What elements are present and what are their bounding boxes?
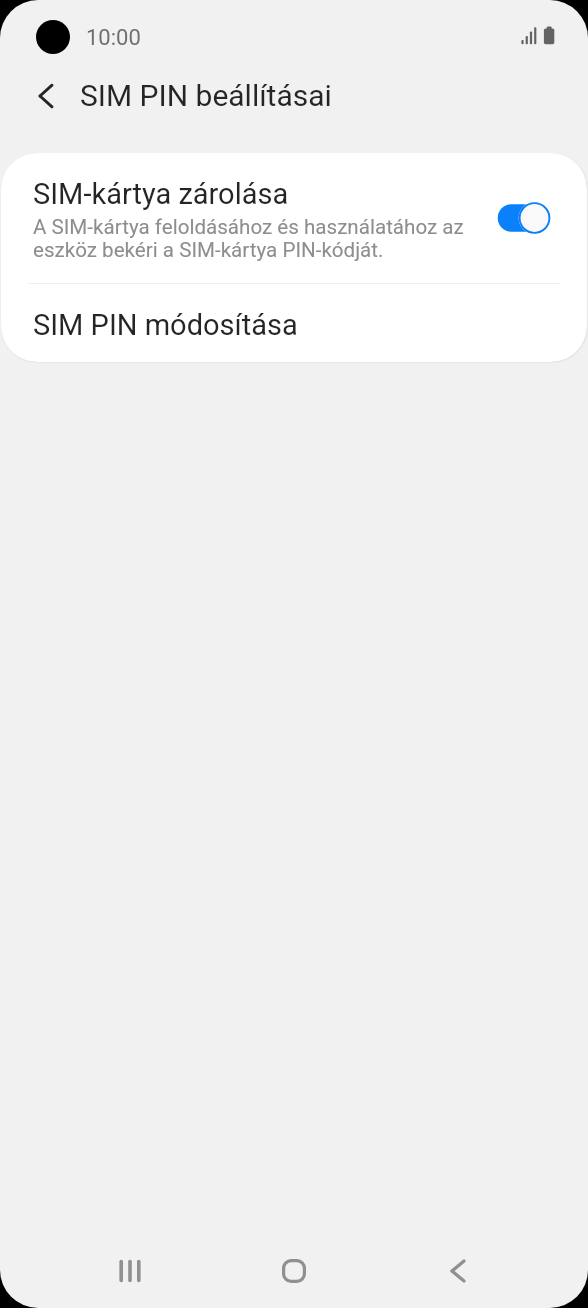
button[interactable]: Navigate up — [19, 70, 71, 122]
button[interactable]: Lock SIM card, on — [497, 201, 551, 235]
button[interactable]: SIM PIN módosítása — [1, 284, 587, 362]
staticText: SIM PIN beállításai — [80, 78, 332, 113]
staticText: SIM PIN módosítása — [33, 308, 298, 342]
staticText: A SIM-kártya feloldásához és használatáh… — [33, 215, 473, 262]
button[interactable]: Back — [424, 1237, 492, 1305]
button[interactable]: SIM-kártya zárolása — [1, 153, 587, 283]
button[interactable]: Recent apps — [96, 1237, 164, 1305]
staticText: SIM-kártya zárolása — [33, 177, 289, 211]
staticText: 10:00 — [86, 25, 141, 51]
button[interactable]: Home — [260, 1237, 328, 1305]
